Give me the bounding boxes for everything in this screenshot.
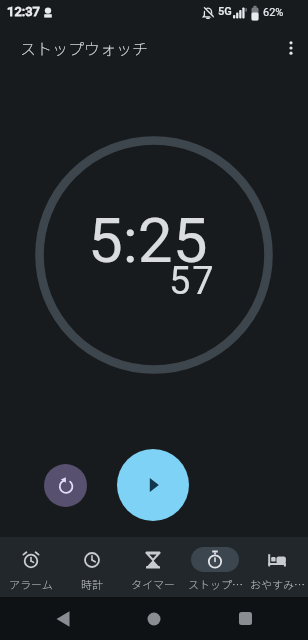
staticText: 5:25 <box>88 204 208 277</box>
button[interactable]: ストップ… <box>184 537 246 597</box>
button[interactable] <box>39 597 87 640</box>
staticText: ストップ… <box>188 576 243 592</box>
staticText: おやすみ… <box>250 576 305 592</box>
button[interactable] <box>44 464 87 507</box>
staticText: 時計 <box>81 576 103 592</box>
button[interactable]: おやすみ… <box>246 537 308 597</box>
button[interactable]: 時計 <box>61 537 122 597</box>
staticText: ストップウォッチ <box>20 36 149 59</box>
button[interactable] <box>117 449 189 521</box>
staticText: アラーム <box>9 576 53 592</box>
staticText: 57 <box>169 259 216 304</box>
staticText: 5G <box>218 5 232 18</box>
button[interactable] <box>279 34 303 62</box>
button[interactable] <box>221 597 269 640</box>
staticText: 62% <box>263 6 284 19</box>
button[interactable]: アラーム <box>0 537 61 597</box>
button[interactable]: タイマー <box>122 537 184 597</box>
button[interactable] <box>130 597 178 640</box>
staticText: タイマー <box>131 576 175 592</box>
staticText: 12:37 <box>7 4 41 19</box>
